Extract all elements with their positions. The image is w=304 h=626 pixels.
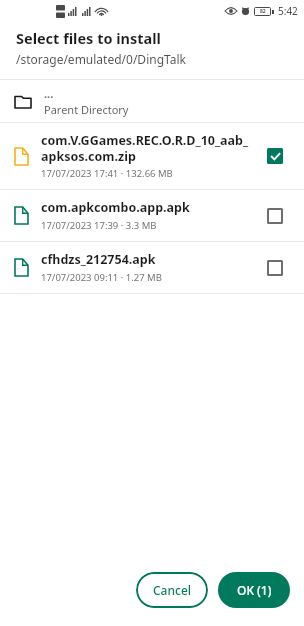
- button[interactable]: OK (1): [218, 572, 290, 608]
- button[interactable]: ...: [0, 80, 304, 122]
- staticText: 17/07/2023 17:39 · 3.3 MB: [41, 219, 157, 232]
- staticText: Select files to install: [16, 28, 161, 48]
- button[interactable]: cfhdzs_212754.apk: [0, 242, 304, 293]
- button[interactable]: com.V.GGames.REC.O.R.D_10_aab_ apksos.co…: [0, 123, 304, 189]
- staticText: 82: [260, 8, 266, 15]
- staticText: 5:42: [278, 4, 298, 18]
- staticText: Cancel: [153, 582, 192, 598]
- staticText: 17/07/2023 17:41 · 132.66 MB: [41, 167, 173, 180]
- staticText: Parent Directory: [44, 102, 129, 117]
- staticText: com.apkcombo.app.apk: [41, 199, 190, 216]
- staticText: ...: [44, 86, 54, 101]
- staticText: OK (1): [237, 582, 272, 598]
- staticText: /storage/emulated/0/DingTalk: [16, 51, 186, 67]
- staticText: cfhdzs_212754.apk: [41, 251, 156, 268]
- button[interactable]: Not selected: [260, 201, 290, 231]
- button[interactable]: Selected: [260, 141, 290, 171]
- staticText: 17/07/2023 09:11 · 1.27 MB: [41, 271, 162, 284]
- button[interactable]: com.apkcombo.app.apk: [0, 190, 304, 241]
- staticText: com.V.GGames.REC.O.R.D_10_aab_ apksos.co…: [41, 132, 249, 164]
- button[interactable]: Cancel: [136, 572, 208, 608]
- button[interactable]: Not selected: [260, 253, 290, 283]
